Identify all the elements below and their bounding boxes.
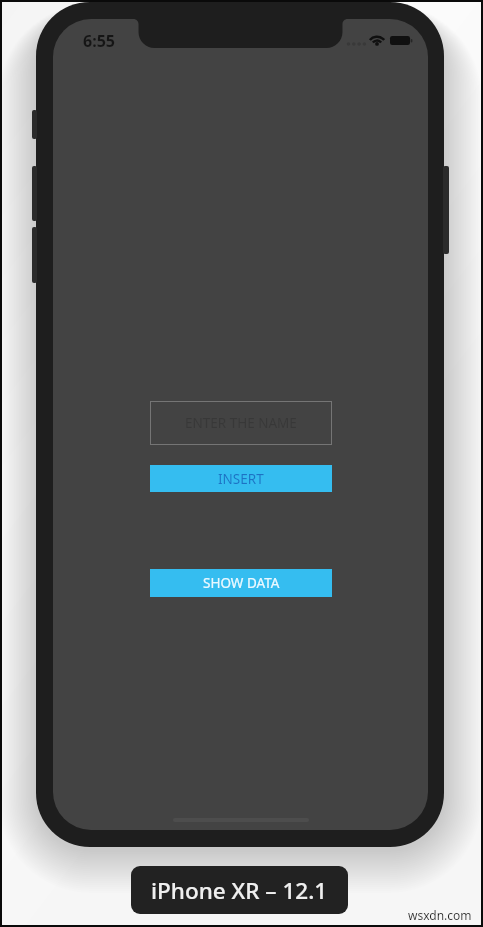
button[interactable]: INSERT bbox=[150, 465, 332, 492]
staticText: SHOW DATA bbox=[203, 574, 280, 592]
staticText: iPhone XR – 12.1 bbox=[151, 875, 328, 906]
staticText: ENTER THE NAME bbox=[185, 414, 297, 432]
staticText: wsxdn.com bbox=[408, 907, 472, 923]
staticText: INSERT bbox=[218, 470, 264, 488]
staticText: 6:55 bbox=[83, 30, 115, 52]
button[interactable]: iPhone XR – 12.1 bbox=[131, 866, 348, 914]
button[interactable]: ENTER THE NAME bbox=[150, 401, 332, 445]
button[interactable]: SHOW DATA bbox=[150, 569, 332, 597]
